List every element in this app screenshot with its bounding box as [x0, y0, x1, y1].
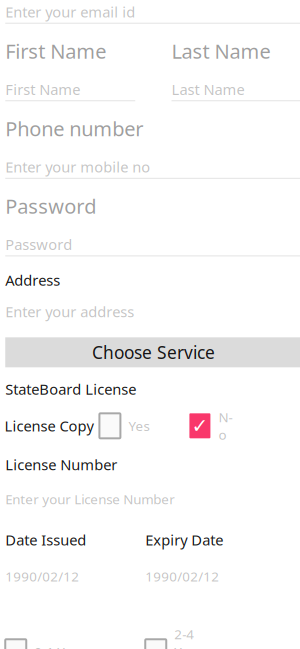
button[interactable]: First Name	[5, 78, 135, 100]
staticText: Date Issued	[5, 530, 86, 549]
button[interactable]: Enter your mobile no	[5, 156, 300, 178]
button[interactable]: Yes	[99, 413, 189, 438]
staticText: Expiry Date	[145, 530, 223, 549]
staticText: Enter your email id	[5, 2, 135, 21]
staticText: Enter your License Number	[5, 490, 175, 508]
button[interactable]: Password	[5, 233, 300, 255]
staticText: License Copy	[4, 416, 93, 436]
staticText: Password	[5, 193, 96, 219]
button[interactable]: 1990/02/12	[145, 567, 300, 585]
staticText: Address	[5, 270, 60, 290]
staticText: 1990/02/12	[5, 567, 79, 585]
staticText: Password	[5, 235, 72, 254]
staticText: ✓	[191, 414, 208, 437]
staticText: Last Name	[171, 79, 244, 99]
button[interactable]: ✓	[189, 408, 248, 443]
staticText: Enter your address	[5, 302, 134, 321]
staticText: First Name	[5, 38, 106, 64]
button[interactable]: 0-1 Years	[5, 639, 145, 649]
button[interactable]: Enter your License Number	[5, 490, 300, 508]
staticText: Enter your mobile no	[5, 157, 150, 177]
button[interactable]: Enter your email id	[5, 1, 300, 23]
staticText: 1990/02/12	[145, 567, 219, 585]
button[interactable]: 1990/02/12	[5, 567, 145, 585]
button[interactable]: 2-4 Years	[145, 625, 223, 649]
staticText: 0-1 Years	[34, 643, 91, 649]
staticText: Yes	[128, 417, 149, 435]
staticText: Phone number	[5, 115, 143, 142]
staticText: License Number	[5, 455, 117, 474]
staticText: StateBoard License	[5, 379, 136, 399]
staticText: Last Name	[171, 38, 270, 64]
staticText: Choose Service	[92, 341, 215, 364]
staticText: 2-4 Years	[174, 625, 206, 649]
button[interactable]: Choose Service	[5, 337, 300, 367]
button[interactable]: Last Name	[171, 78, 300, 100]
staticText: First Name	[5, 79, 80, 99]
staticText: No	[218, 408, 232, 443]
